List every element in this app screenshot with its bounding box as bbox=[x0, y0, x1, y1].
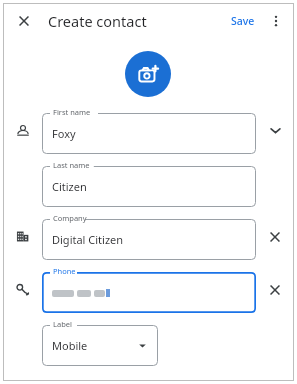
staticText: Save bbox=[231, 14, 255, 28]
staticText: Create contact bbox=[48, 11, 147, 31]
staticText: Label bbox=[53, 319, 72, 329]
staticText: Last name bbox=[53, 160, 90, 170]
button[interactable]: Clear phone bbox=[256, 266, 294, 313]
button[interactable]: Close bbox=[12, 9, 36, 33]
staticText: Digital Citizen bbox=[52, 232, 124, 247]
button[interactable]: Add photo bbox=[125, 51, 171, 97]
staticText: Mobile bbox=[52, 338, 88, 353]
staticText: First name bbox=[53, 107, 91, 117]
staticText: Foxy bbox=[52, 126, 76, 141]
button[interactable]: More options bbox=[265, 10, 287, 32]
staticText: Phone bbox=[53, 266, 76, 276]
staticText: Citizen bbox=[52, 179, 87, 194]
button[interactable]: Expand name fields bbox=[256, 107, 294, 154]
button[interactable]: Save bbox=[226, 11, 260, 31]
staticText: Company bbox=[53, 213, 87, 223]
button[interactable]: Label bbox=[42, 319, 158, 366]
button[interactable]: Clear company bbox=[256, 213, 294, 260]
